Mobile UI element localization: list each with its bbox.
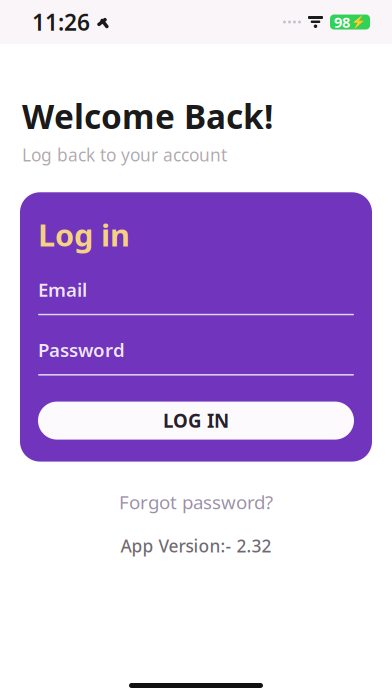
staticText: Forgot password?	[119, 490, 273, 514]
staticText: ⚡	[351, 15, 366, 29]
staticText: 11:26	[32, 7, 90, 37]
staticText: App Version:- 2.32	[120, 534, 271, 557]
staticText: Password	[38, 337, 125, 362]
button[interactable]: Forgot password?	[0, 486, 392, 518]
staticText: Welcome Back!	[22, 94, 273, 138]
staticText: LOG IN	[163, 408, 229, 433]
staticText: Log back to your account	[22, 143, 227, 166]
button[interactable]: LOG IN	[38, 402, 354, 440]
staticText: 98	[334, 12, 350, 32]
staticText: Email	[38, 277, 87, 302]
staticText: Log in	[38, 214, 130, 255]
